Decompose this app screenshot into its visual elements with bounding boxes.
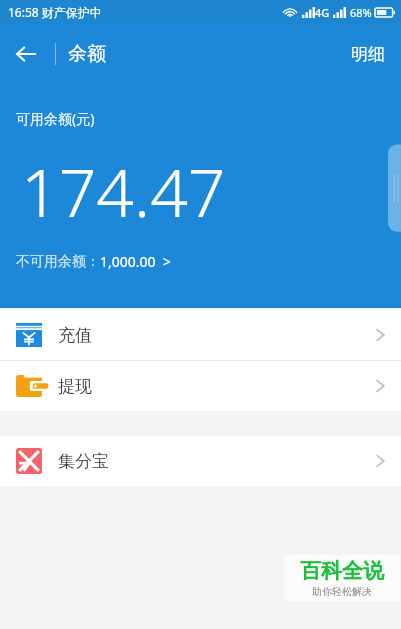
staticText: 不可用余额： xyxy=(16,253,100,271)
button[interactable]: 集分宝 xyxy=(0,436,401,486)
button[interactable]: 充值 xyxy=(0,310,401,360)
staticText: 4G xyxy=(315,5,330,20)
staticText: 可用余额(元) xyxy=(16,109,95,128)
button[interactable]: 明细 xyxy=(335,24,401,84)
staticText: 174.47 xyxy=(21,146,226,236)
button[interactable]: 提现 xyxy=(0,361,401,411)
staticText: 68% xyxy=(350,5,372,20)
staticText: 助你轻松解决 xyxy=(312,585,372,598)
staticText: 集分宝 xyxy=(58,451,109,472)
staticText: 提现 xyxy=(58,376,92,397)
button[interactable]: 不可用余额： xyxy=(16,250,171,273)
staticText: 充值 xyxy=(58,325,92,346)
staticText: 明细 xyxy=(351,44,385,65)
staticText: 1,000.00 > xyxy=(100,252,171,271)
button[interactable]: Back xyxy=(0,28,52,80)
staticText: 16:58 财产保护中 xyxy=(8,4,102,20)
staticText: 余额 xyxy=(68,42,106,66)
staticText: 百科全说 xyxy=(300,558,384,584)
